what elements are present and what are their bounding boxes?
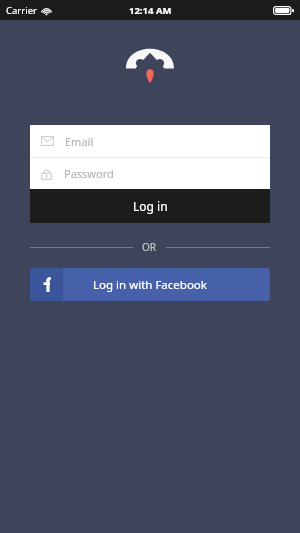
staticText: 12:14 AM — [129, 4, 172, 17]
staticText: Log in with Facebook — [93, 277, 207, 293]
button[interactable]: Email — [30, 125, 270, 157]
button[interactable]: Password — [30, 158, 270, 189]
staticText: Email — [65, 134, 94, 149]
staticText: Password — [64, 166, 114, 181]
staticText: Carrier — [6, 4, 37, 17]
staticText: Log in — [133, 198, 168, 214]
button[interactable]: Log in — [30, 189, 270, 223]
other: Facebook — [43, 277, 51, 292]
button[interactable]: Facebook — [30, 268, 270, 301]
staticText: OR — [142, 240, 157, 254]
